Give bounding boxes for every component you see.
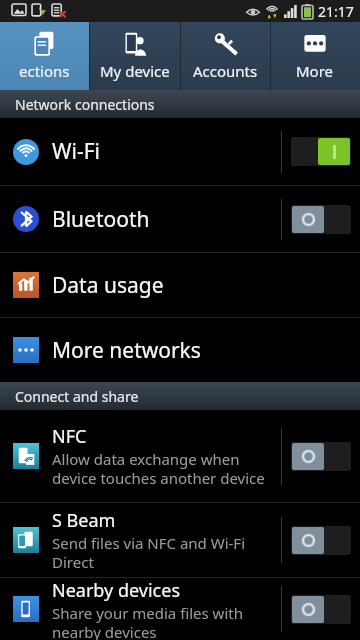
staticText: Allow data exchange when device touches … — [52, 449, 275, 488]
staticText: Data usage — [52, 271, 164, 300]
button[interactable]: S Beam — [0, 503, 360, 577]
button[interactable]: ections — [0, 22, 89, 90]
button[interactable]: More networks — [0, 318, 360, 382]
staticText: Nearby devices — [52, 578, 180, 603]
button[interactable]: Bluetooth — [0, 186, 360, 252]
staticText: NFC — [52, 424, 87, 449]
staticText: Connect and share — [15, 387, 139, 406]
button[interactable]: Off — [291, 595, 351, 624]
staticText: Accounts — [193, 61, 258, 81]
button[interactable]: Off — [291, 442, 351, 471]
staticText: Send files via NFC and Wi-Fi Direct — [52, 533, 275, 572]
staticText: Wi-Fi — [52, 137, 101, 166]
staticText: More — [296, 61, 334, 81]
button[interactable]: Nearby devices — [0, 578, 360, 640]
staticText: Bluetooth — [52, 205, 150, 234]
staticText: Network connections — [15, 95, 155, 114]
button[interactable]: Off — [291, 205, 351, 234]
button[interactable]: My device — [89, 22, 180, 90]
staticText: My device — [100, 61, 170, 81]
staticText: S Beam — [52, 508, 116, 533]
staticText: ections — [19, 61, 70, 81]
staticText: 21:17 — [318, 2, 354, 21]
button[interactable]: Accounts — [180, 22, 270, 90]
button[interactable]: On — [291, 137, 351, 166]
staticText: More networks — [52, 336, 201, 365]
staticText: Share your media files with nearby devic… — [52, 603, 275, 640]
button[interactable]: Wi-Fi — [0, 118, 360, 185]
button[interactable]: Data usage — [0, 253, 360, 317]
button[interactable]: Off — [291, 526, 351, 555]
button[interactable]: NFC — [0, 410, 360, 502]
button[interactable]: More — [270, 22, 360, 90]
